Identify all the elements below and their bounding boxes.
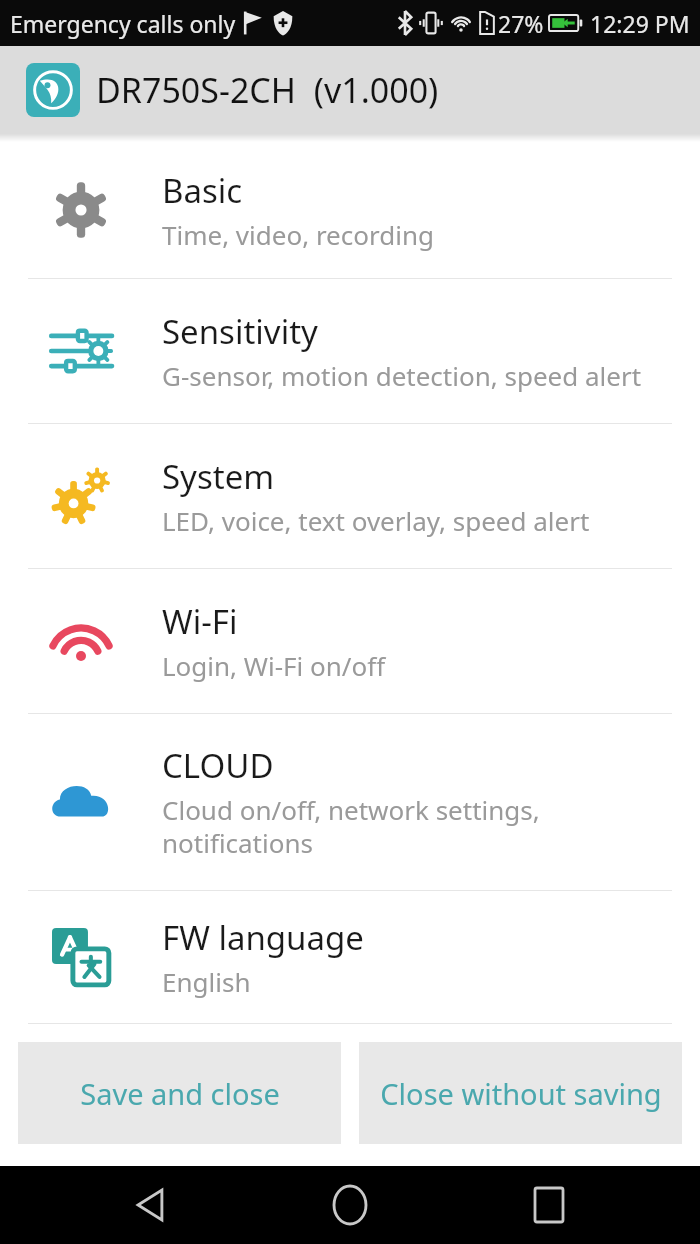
button[interactable]: Recents — [501, 1166, 597, 1244]
button[interactable]: Wi-Fi — [0, 569, 700, 714]
staticText: Login, Wi-Fi on/off — [162, 648, 386, 683]
staticText: English — [162, 964, 251, 999]
staticText: DR750S-2CH (v1.000) — [96, 67, 439, 113]
staticText: Emergency calls only — [10, 8, 236, 39]
staticText: G-sensor, motion detection, speed alert — [162, 358, 642, 393]
staticText: CLOUD — [162, 743, 274, 788]
staticText: LED, voice, text overlay, speed alert — [162, 503, 590, 538]
staticText: Save and close — [80, 1074, 280, 1113]
staticText: 27% — [498, 8, 544, 39]
staticText: System — [162, 454, 275, 499]
button[interactable]: FW language — [0, 891, 700, 1024]
staticText: Basic — [162, 168, 243, 213]
button[interactable]: Basic — [0, 142, 700, 279]
button[interactable]: CLOUD — [0, 714, 700, 891]
staticText: Cloud on/off, network settings, notifica… — [162, 792, 540, 861]
button[interactable]: Back — [103, 1166, 199, 1244]
button[interactable]: Home — [302, 1166, 398, 1244]
staticText: Wi-Fi — [162, 599, 238, 644]
button[interactable]: Sensitivity — [0, 279, 700, 424]
staticText: Sensitivity — [162, 309, 318, 354]
staticText: Close without saving — [380, 1074, 662, 1113]
button[interactable]: System — [0, 424, 700, 569]
button[interactable]: Close without saving — [359, 1042, 682, 1144]
staticText: FW language — [162, 915, 364, 960]
staticText: Time, video, recording — [162, 217, 434, 252]
button[interactable]: Save and close — [18, 1042, 341, 1144]
staticText: 12:29 PM — [590, 8, 690, 39]
